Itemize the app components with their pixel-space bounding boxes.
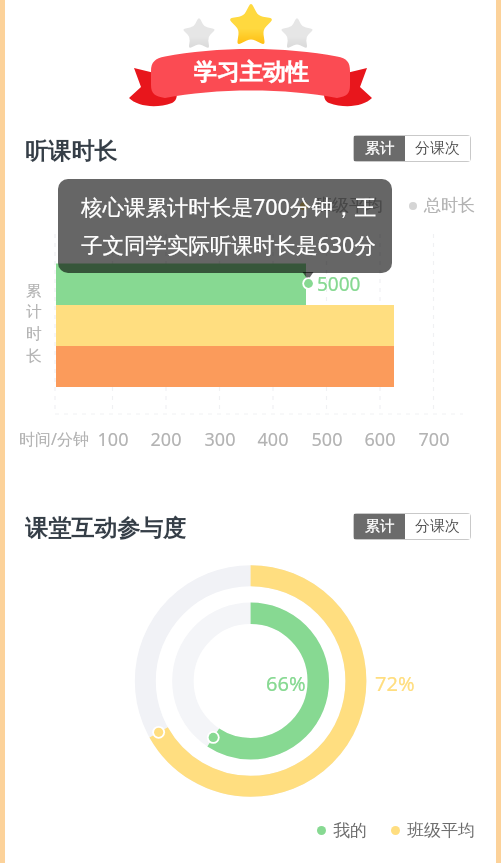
- button[interactable]: 累计: [354, 514, 405, 539]
- staticText: 班级平均: [407, 820, 475, 841]
- staticText: 时间/分钟: [19, 428, 89, 450]
- staticText: 课堂互动参与度: [25, 514, 186, 543]
- staticText: 72%: [375, 670, 415, 697]
- button[interactable]: 累计: [354, 136, 405, 161]
- staticText: 累计: [365, 517, 395, 536]
- staticText: 5000: [317, 271, 361, 297]
- staticText: 分课次: [415, 139, 460, 158]
- staticText: 累计: [365, 139, 395, 158]
- staticText: 分课次: [415, 517, 460, 536]
- staticText: 66%: [266, 670, 306, 697]
- staticText: 总时长: [424, 195, 475, 216]
- staticText: 200: [146, 427, 186, 452]
- staticText: 400: [253, 427, 293, 452]
- staticText: 300: [200, 427, 240, 452]
- staticText: 听课时长: [25, 137, 117, 166]
- button[interactable]: 分课次: [405, 514, 470, 539]
- staticText: 100: [93, 427, 133, 452]
- staticText: 我的: [333, 820, 367, 841]
- staticText: 学习主动性: [176, 58, 326, 87]
- staticText: 600: [360, 427, 400, 452]
- staticText: 核心课累计时长是700分钟，王 子文同学实际听课时长是630分: [81, 192, 376, 259]
- staticText: 500: [307, 427, 347, 452]
- button[interactable]: 分课次: [405, 136, 470, 161]
- staticText: 累 计 时 长: [26, 281, 42, 366]
- staticText: 班级平均: [315, 195, 383, 216]
- staticText: 700: [414, 427, 454, 452]
